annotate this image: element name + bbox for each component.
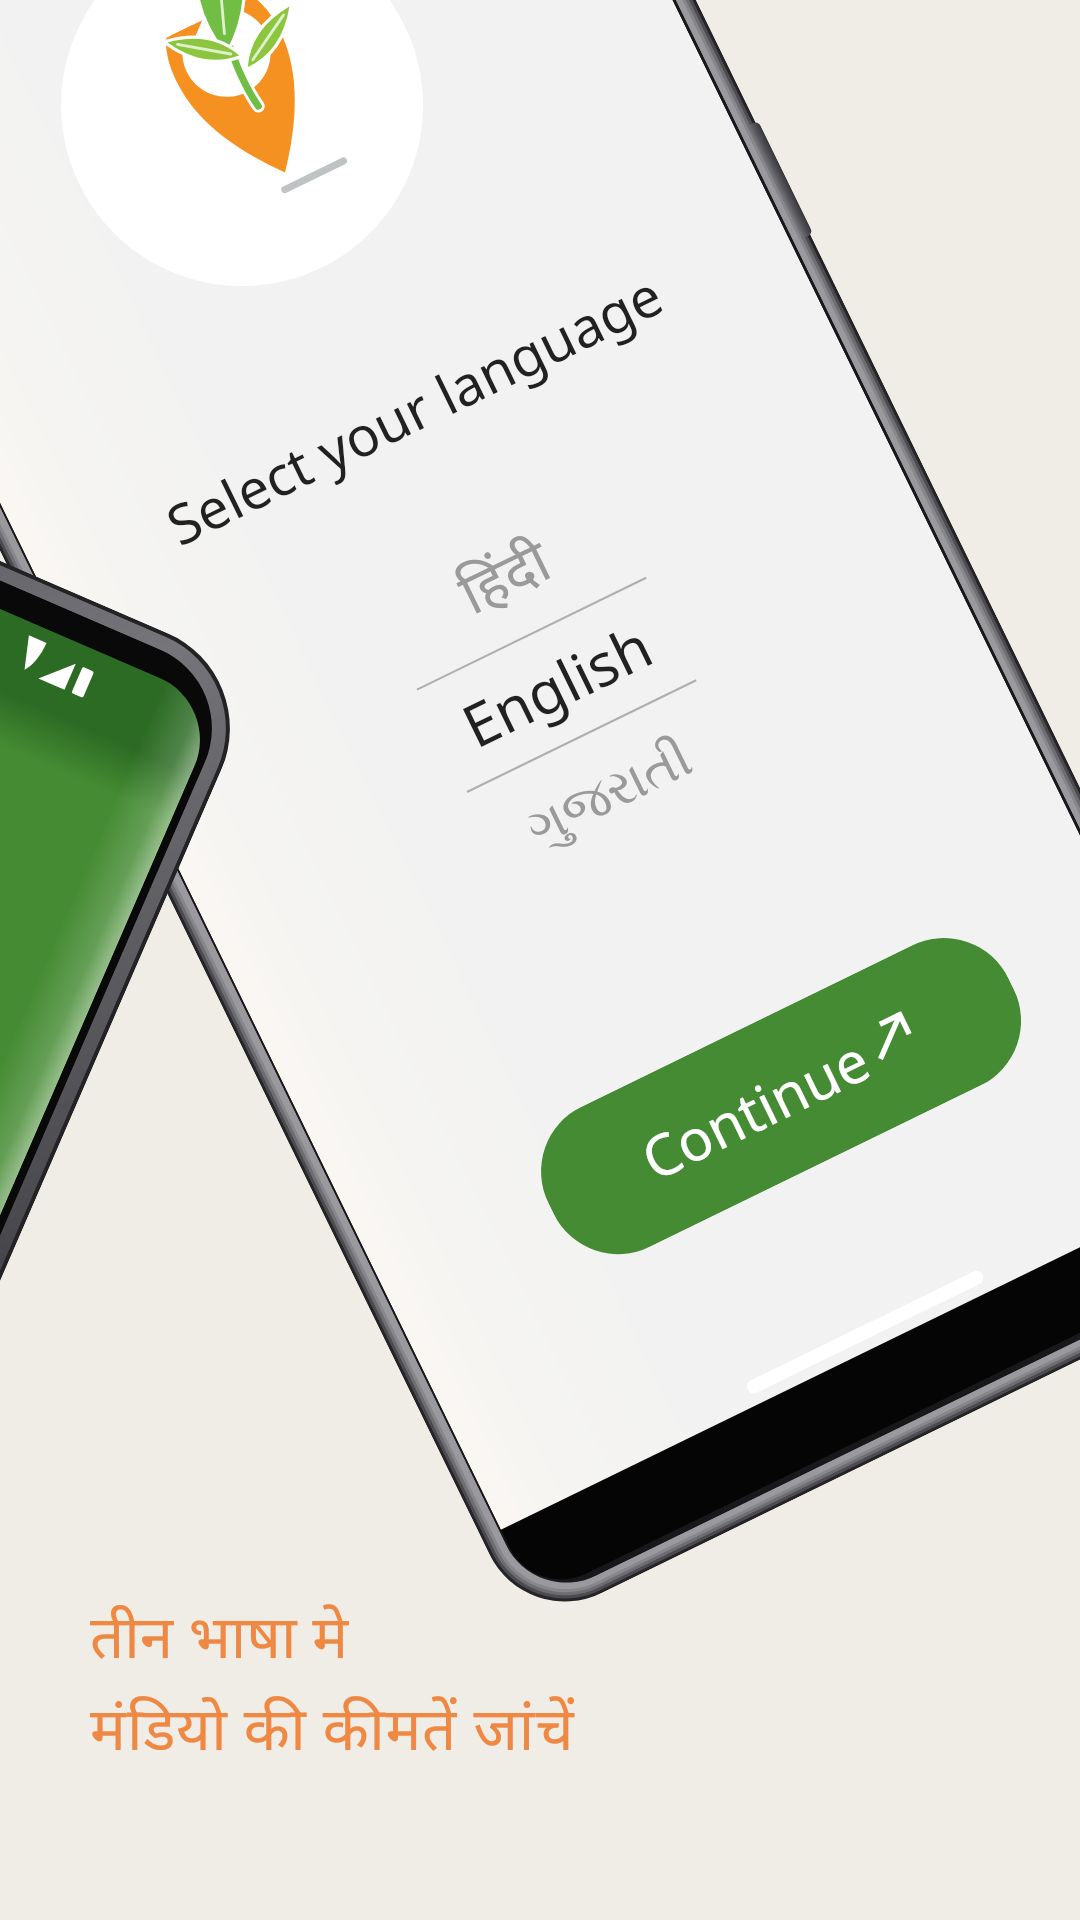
staticText: English	[449, 605, 664, 765]
button[interactable]: हिंदी	[360, 462, 646, 689]
button[interactable]: Continue	[517, 914, 1045, 1278]
button[interactable]: ગુજરાતી	[467, 681, 753, 908]
other: Continue	[854, 1000, 926, 1072]
staticText: तीन भाषा मे	[90, 1594, 349, 1676]
staticText: ગુજરાતી	[519, 732, 701, 857]
staticText: Continue	[628, 1020, 882, 1197]
other: Status icons	[8, 631, 178, 747]
staticText: Select your language	[154, 257, 674, 562]
button[interactable]: English	[417, 579, 696, 791]
staticText: हिंदी	[445, 520, 562, 631]
staticText: मंडियो की कीमतें जांचें	[90, 1686, 575, 1768]
